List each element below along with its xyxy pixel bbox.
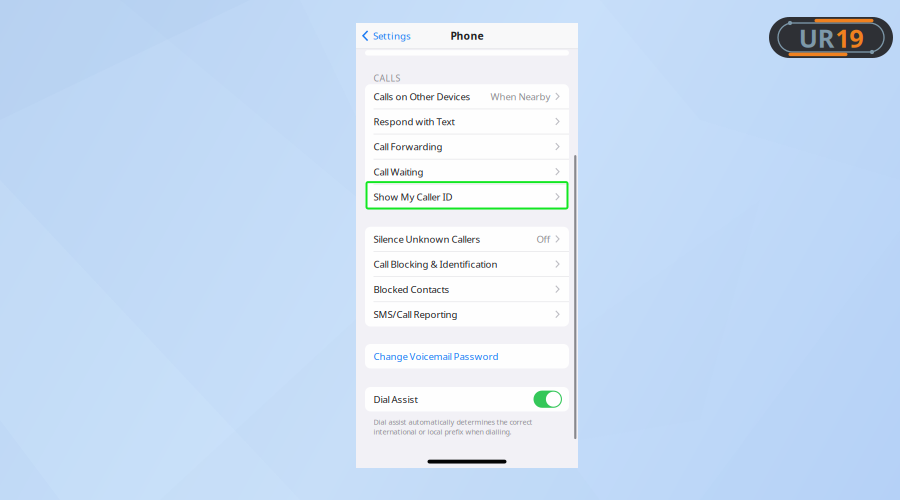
staticText: Dial assist automatically determines the… xyxy=(373,417,532,437)
button[interactable]: Respond with Text xyxy=(365,109,569,134)
staticText: When Nearby xyxy=(490,90,550,103)
button[interactable]: Change Voicemail Password xyxy=(365,344,569,368)
button[interactable]: SMS/Call Reporting xyxy=(365,302,569,326)
staticText: Call Blocking & Identification xyxy=(373,258,497,271)
staticText: Blocked Contacts xyxy=(373,283,449,296)
button[interactable]: Settings xyxy=(356,23,411,48)
staticText: 19 xyxy=(835,21,863,55)
button[interactable]: Calls on Other Devices xyxy=(365,84,569,109)
button[interactable]: Silence Unknown Callers xyxy=(365,227,569,251)
staticText: CALLS xyxy=(373,72,400,84)
button[interactable]: Call Blocking & Identification xyxy=(365,252,569,276)
staticText: Calls on Other Devices xyxy=(373,90,470,103)
button[interactable]: Call Waiting xyxy=(365,159,569,184)
button[interactable]: Show My Caller ID xyxy=(365,185,569,209)
staticText: SMS/Call Reporting xyxy=(373,308,457,321)
staticText: Call Waiting xyxy=(373,165,423,178)
staticText: Off xyxy=(536,232,550,246)
button[interactable]: Blocked Contacts xyxy=(365,277,569,301)
button[interactable]: Dial Assist xyxy=(533,391,562,408)
staticText: Show My Caller ID xyxy=(373,190,452,203)
staticText: Change Voicemail Password xyxy=(373,350,498,363)
staticText: Respond with Text xyxy=(373,115,454,128)
staticText: Dial Assist xyxy=(373,393,417,406)
staticText: Phone xyxy=(450,29,483,43)
staticText: UR xyxy=(799,21,835,55)
button[interactable]: Call Forwarding xyxy=(365,134,569,159)
staticText: Silence Unknown Callers xyxy=(373,232,480,246)
staticText: Settings xyxy=(373,29,411,42)
staticText: Call Forwarding xyxy=(373,140,442,153)
